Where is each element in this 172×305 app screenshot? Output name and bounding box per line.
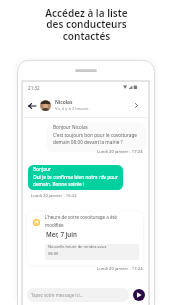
staticText: Lundi 20 janvier - 17:24 — [97, 266, 143, 272]
button[interactable]: Tapez votre message ici... — [27, 288, 129, 302]
button[interactable]: Envoyer — [133, 289, 145, 301]
staticText: Nouvelle heure de rendez-vous 08:00 — [48, 244, 107, 256]
staticText: Bonjour Nicolas C'est toujours bon pour … — [53, 124, 137, 145]
button[interactable]: Back — [22, 94, 149, 117]
button[interactable]: Back — [26, 100, 37, 111]
staticText: Lundi 20 janvier - 16:32 — [31, 193, 77, 199]
button[interactable]: Bonjour Nicolas C'est toujours bon pour … — [48, 124, 144, 150]
staticText: Vu, il y a 3 heures — [55, 106, 89, 112]
staticText: L'heure de votre covoiturage a été modif… — [45, 214, 117, 229]
staticText: Lundi 20 janvier - 17:24 — [97, 149, 143, 155]
staticText: Accédez à la liste des conducteurs conta… — [45, 6, 128, 43]
staticText: 21:32 — [28, 85, 40, 91]
staticText: Tapez votre message ici... — [31, 292, 84, 298]
staticText: Nicolas — [55, 99, 73, 106]
staticText: Bonjour Oui je te confirme bien notre rd… — [33, 166, 118, 187]
button[interactable]: Voir le profil — [132, 101, 141, 110]
button[interactable]: Bonjour Oui je te confirme bien notre rd… — [28, 165, 123, 190]
button[interactable]: L'heure de votre covoiturage a été modif… — [27, 212, 143, 265]
staticText: Mer, 7 juin — [46, 230, 77, 238]
